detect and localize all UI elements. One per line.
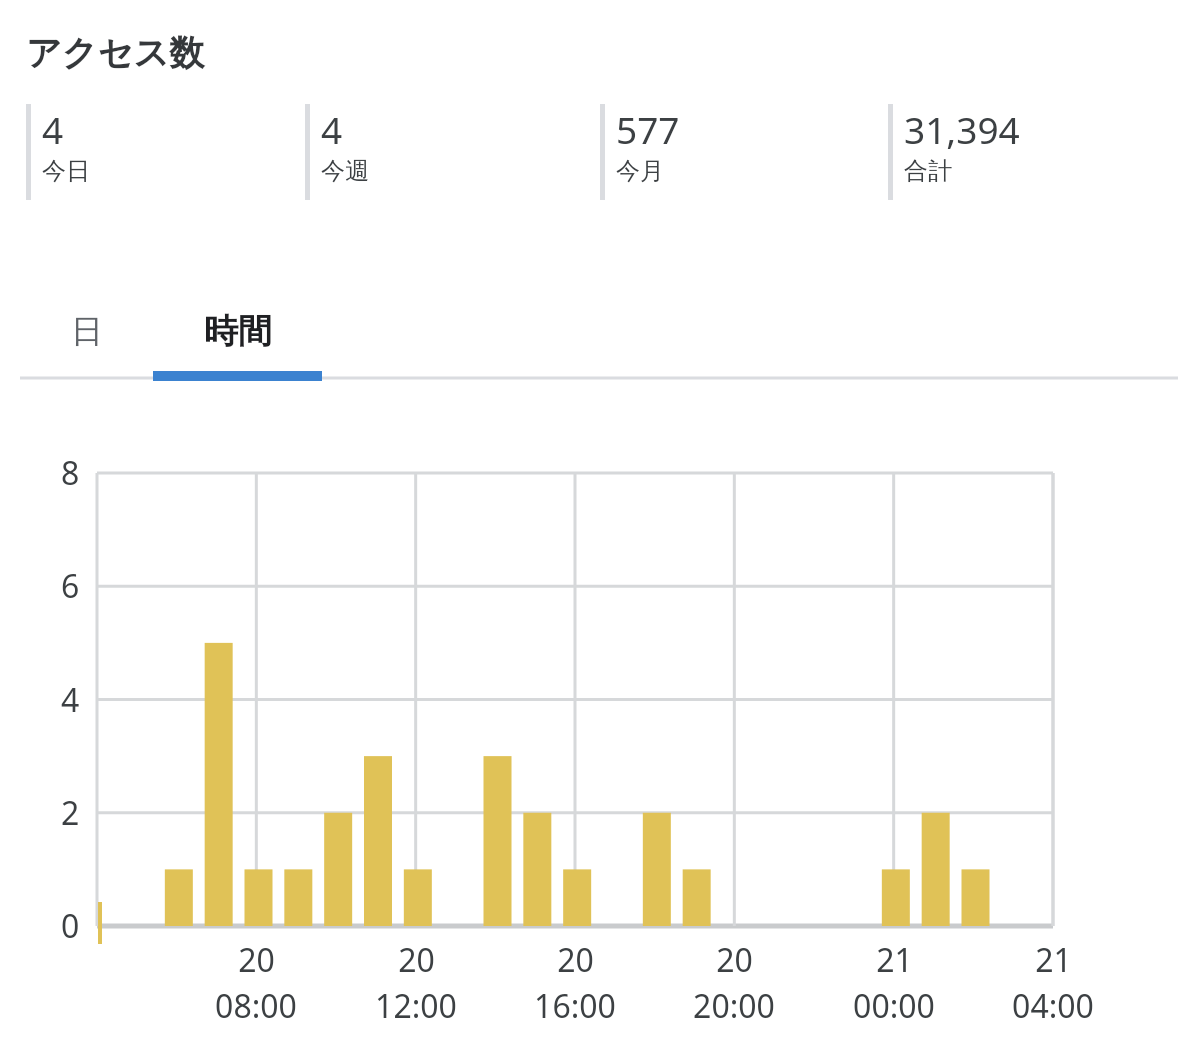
staticText: 4 (61, 678, 80, 722)
staticText: アクセス数 (26, 31, 205, 75)
staticText: 2 (61, 791, 80, 835)
staticText: 16:00 (534, 984, 616, 1028)
staticText: 4 (321, 104, 343, 154)
staticText: 日 (71, 311, 103, 351)
button[interactable]: 4 (305, 104, 369, 200)
staticText: 04:00 (1012, 984, 1094, 1028)
staticText: 577 (616, 104, 680, 154)
staticText: 今日 (42, 156, 90, 186)
staticText: 0 (61, 904, 80, 948)
button[interactable]: 31,394 (888, 104, 1020, 200)
button[interactable]: 4 (26, 104, 90, 200)
staticText: 00:00 (853, 984, 935, 1028)
staticText: 21 (876, 938, 913, 982)
staticText: 時間 (204, 310, 272, 353)
staticText: 08:00 (215, 984, 297, 1028)
staticText: 20 (238, 938, 275, 982)
staticText: 20 (398, 938, 435, 982)
staticText: 6 (61, 564, 80, 608)
staticText: 合計 (904, 156, 952, 186)
staticText: 31,394 (904, 104, 1020, 154)
staticText: 21 (1035, 938, 1072, 982)
button[interactable]: 577 (600, 104, 680, 200)
staticText: 20:00 (693, 984, 775, 1028)
staticText: 4 (42, 104, 64, 154)
staticText: 20 (716, 938, 753, 982)
button[interactable]: 日 (20, 284, 153, 378)
staticText: 今月 (616, 156, 664, 186)
staticText: 12:00 (375, 984, 457, 1028)
staticText: 8 (61, 451, 80, 495)
button[interactable]: 時間 (153, 284, 322, 378)
staticText: 20 (557, 938, 594, 982)
staticText: 今週 (321, 156, 369, 186)
